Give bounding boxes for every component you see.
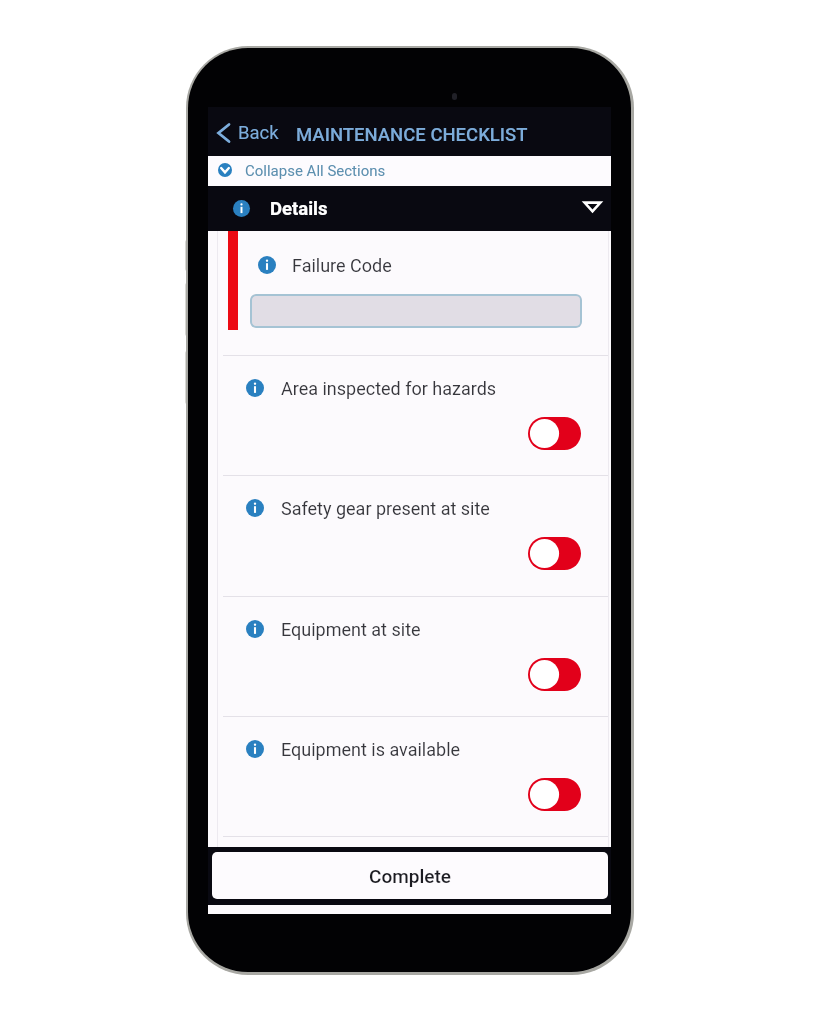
button[interactable]: Complete [212, 852, 608, 899]
staticText: MAINTENANCE CHECKLIST [296, 124, 528, 146]
button[interactable]: Details [208, 186, 611, 230]
staticText: Area inspected for hazards [281, 378, 497, 399]
staticText: Back [238, 122, 279, 144]
button[interactable]: Equipment at site [208, 596, 611, 716]
button[interactable]: Area inspected for hazards [208, 355, 611, 475]
button[interactable]: Collapse All Sections [208, 156, 611, 186]
staticText: Equipment is available [281, 739, 461, 760]
staticText: Equipment at site [281, 619, 421, 640]
button[interactable]: Equipment at site toggle [528, 658, 581, 691]
staticText: Details [270, 198, 328, 220]
staticText: Complete [369, 865, 452, 887]
button[interactable]: Back [209, 115, 285, 151]
staticText: Collapse All Sections [245, 162, 386, 180]
button[interactable]: Equipment is available [208, 716, 611, 836]
button[interactable]: Equipment is available toggle [528, 778, 581, 811]
button[interactable]: Failure Code [208, 231, 611, 356]
button[interactable]: Area inspected for hazards toggle [528, 417, 581, 450]
button[interactable]: Safety gear present at site [208, 475, 611, 595]
button[interactable]: Safety gear present at site toggle [528, 537, 581, 570]
staticText: Safety gear present at site [281, 498, 490, 519]
button[interactable]: Failure Code input field [250, 294, 582, 328]
staticText: Failure Code [292, 255, 392, 276]
